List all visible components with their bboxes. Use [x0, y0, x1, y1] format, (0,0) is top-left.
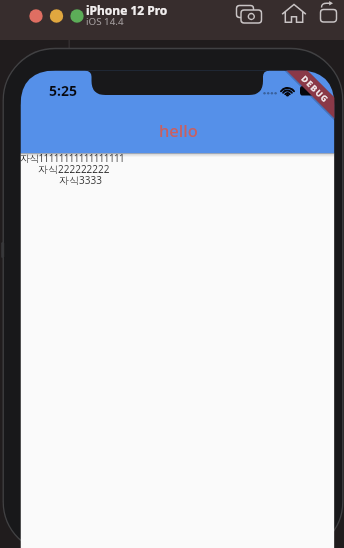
- staticText: iPhone 12 Pro: [86, 2, 168, 18]
- staticText: hello: [159, 119, 198, 141]
- button[interactable]: [316, 3, 340, 27]
- staticText: iOS 14.4: [86, 15, 124, 28]
- staticText: 자식3333: [59, 173, 102, 187]
- staticText: 5:25: [49, 81, 77, 100]
- staticText: 자식11111111111111111: [20, 151, 124, 165]
- button[interactable]: [279, 3, 307, 27]
- staticText: DEBUG: [299, 73, 332, 105]
- staticText: 자식222222222: [38, 162, 110, 176]
- button[interactable]: [234, 3, 264, 27]
